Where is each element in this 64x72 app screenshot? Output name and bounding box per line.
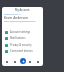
button[interactable]: Messages [27,59,33,65]
staticText: kevin.anderson@example.com [4,20,36,23]
staticText: My Account [15,8,30,12]
staticText: PREMIUM PLAN [4,13,21,16]
button[interactable]: My Account [2,7,43,12]
button[interactable]: Profile [35,59,41,65]
button[interactable]: Home [4,59,10,65]
button[interactable]: Privacy & security [2,42,43,48]
staticText: Privacy & security [10,43,32,47]
staticText: Connected devices [10,49,33,53]
staticText: Account settings [10,30,31,34]
button[interactable]: Connected devices [2,48,43,54]
staticText: Notifications [10,36,26,40]
button[interactable]: Explore [12,59,18,65]
button[interactable]: Notifications [2,35,43,41]
button[interactable]: Add [20,58,26,64]
staticText: Kevin Anderson [4,16,28,20]
button[interactable]: Account settings [2,29,43,35]
